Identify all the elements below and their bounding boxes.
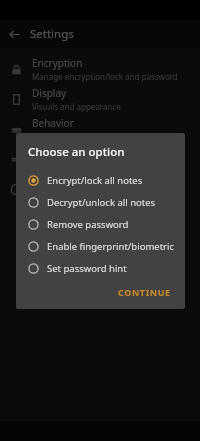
staticText: How notes/options are handled [32,131,151,142]
button[interactable]: Encrypt/lock all notes [16,169,185,191]
button[interactable]: Decrypt/unlock all notes [16,191,185,213]
staticText: Decrypt/unlock all notes [47,196,156,209]
button[interactable]: About [0,174,200,204]
staticText: About [32,176,61,190]
button[interactable]: Remove password [16,213,185,235]
staticText: CONTINUE [118,286,171,298]
button[interactable]: Set password hint [16,257,185,279]
staticText: Encrypt/lock all notes [47,174,143,187]
staticText: Encryption [32,56,83,70]
staticText: Version and info [32,191,94,202]
button[interactable]: Encryption [0,54,200,84]
staticText: Remove password [47,218,129,231]
staticText: Enable fingerprint/biometric auth [47,240,185,253]
button[interactable]: Enable fingerprint/biometric auth [16,235,185,257]
staticText: Manage encryption/lock and password [32,71,178,82]
staticText: Behavior [32,116,74,130]
staticText: Visuals and appearance [32,101,121,112]
staticText: Sharing [32,146,69,160]
button[interactable]: Back [6,26,22,42]
button[interactable]: Behavior [0,114,200,144]
button[interactable]: Sharing [0,144,200,174]
staticText: Choose an option [28,144,125,160]
staticText: Display [32,86,67,100]
button[interactable]: Display [0,84,200,114]
staticText: Settings [30,26,74,42]
staticText: Set password hint [47,262,127,275]
button[interactable]: CONTINUE [114,284,175,300]
